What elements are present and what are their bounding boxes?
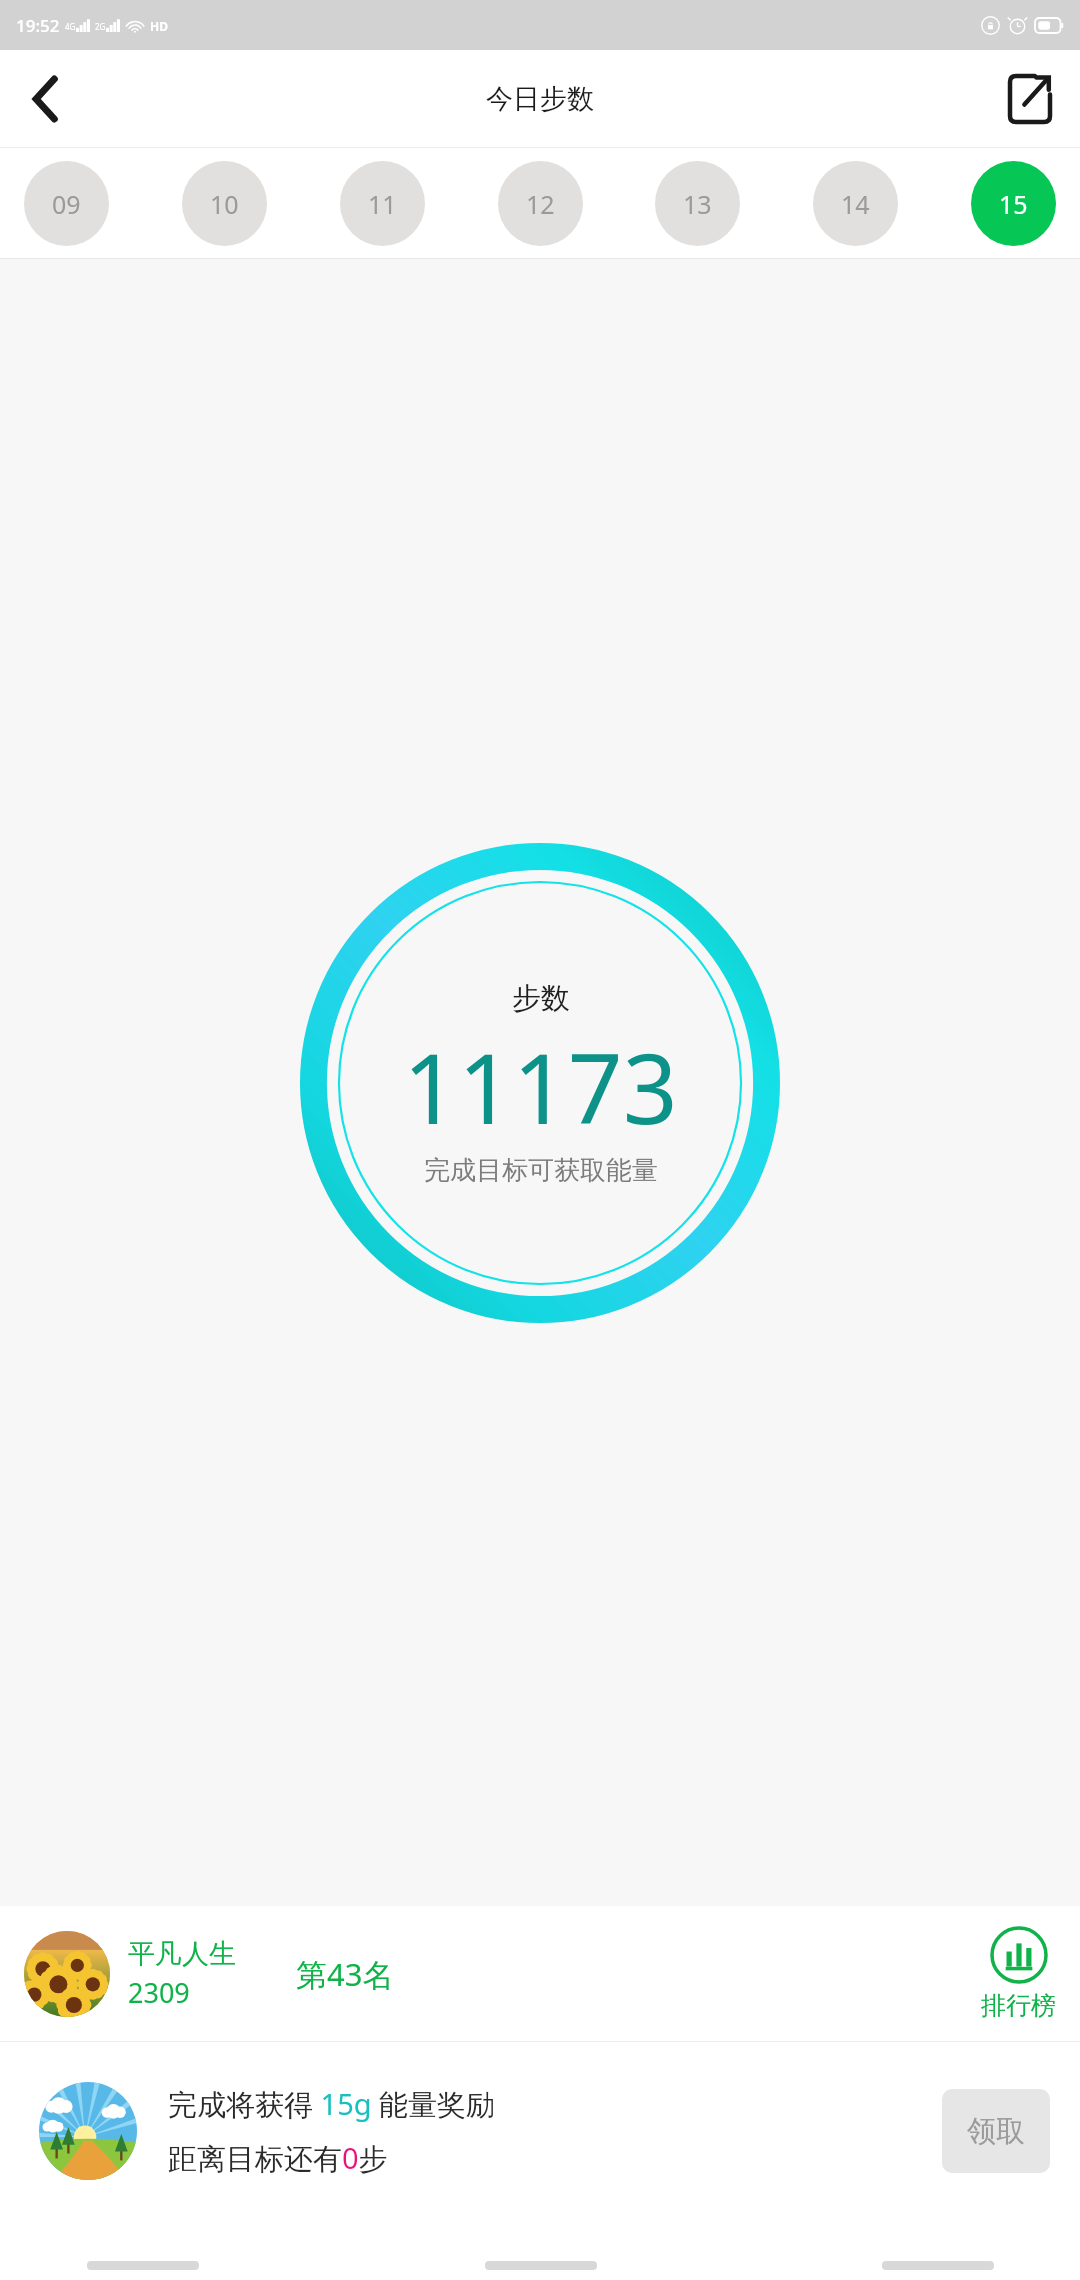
staticText: 领取 bbox=[967, 2113, 1025, 2150]
staticText: 15 bbox=[999, 187, 1028, 221]
button[interactable]: 排行榜 bbox=[981, 1926, 1056, 2021]
staticText: 11 bbox=[368, 187, 397, 221]
staticText: 19:52 bbox=[16, 14, 60, 37]
button[interactable]: 12 bbox=[498, 161, 583, 246]
staticText: 完成目标可获取能量 bbox=[424, 1154, 658, 1187]
button[interactable]: 15 bbox=[971, 161, 1056, 246]
staticText: 09 bbox=[52, 187, 81, 221]
button[interactable]: 09 bbox=[24, 161, 109, 246]
staticText: 12 bbox=[526, 187, 555, 221]
staticText: 距离目标还有0步 bbox=[168, 2138, 388, 2178]
button[interactable]: 10 bbox=[182, 161, 267, 246]
button[interactable]: 14 bbox=[813, 161, 898, 246]
button[interactable]: Share bbox=[994, 63, 1066, 135]
staticText: 2G bbox=[95, 21, 106, 32]
button[interactable]: Back bbox=[10, 63, 82, 135]
staticText: 14 bbox=[841, 187, 870, 221]
staticText: 4G bbox=[65, 21, 76, 32]
staticText: 2309 bbox=[128, 1974, 190, 2011]
button[interactable]: 领取 bbox=[942, 2089, 1050, 2173]
staticText: HD bbox=[150, 18, 168, 34]
staticText: 平凡人生 bbox=[128, 1937, 236, 1971]
staticText: 10 bbox=[210, 187, 239, 221]
staticText: 第43名 bbox=[296, 1953, 394, 1995]
staticText: 11173 bbox=[403, 1021, 678, 1152]
staticText: 今日步数 bbox=[486, 82, 594, 116]
staticText: 完成将获得 15g 能量奖励 bbox=[168, 2084, 496, 2124]
button[interactable]: 平凡人生 bbox=[0, 1906, 1080, 2041]
staticText: 步数 bbox=[512, 980, 570, 1017]
staticText: 排行榜 bbox=[981, 1990, 1056, 2021]
staticText: 13 bbox=[683, 187, 712, 221]
button[interactable]: 11 bbox=[340, 161, 425, 246]
button[interactable]: 13 bbox=[655, 161, 740, 246]
